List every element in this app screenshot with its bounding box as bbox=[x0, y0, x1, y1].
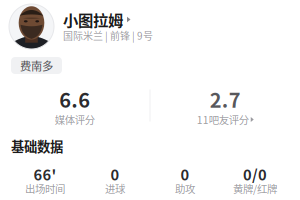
staticText: 出场时间 bbox=[25, 181, 65, 196]
staticText: 媒体评分 bbox=[55, 112, 95, 127]
staticText: 黄牌/红牌 bbox=[233, 181, 277, 196]
button[interactable]: 2.7 bbox=[150, 85, 300, 126]
staticText: 66' bbox=[33, 163, 56, 185]
staticText: 6.6 bbox=[59, 84, 90, 113]
staticText: 2.7 bbox=[210, 84, 241, 113]
staticText: 基础数据 bbox=[11, 136, 63, 156]
staticText: 0/0 bbox=[243, 163, 267, 185]
staticText: 0 bbox=[180, 163, 189, 185]
button[interactable]: 小图拉姆 bbox=[0, 0, 300, 49]
staticText: 进球 bbox=[105, 181, 125, 196]
staticText: 费南多 bbox=[20, 57, 53, 74]
staticText: 0 bbox=[110, 163, 119, 185]
staticText: 助攻 bbox=[175, 181, 195, 196]
staticText: 小图拉姆 bbox=[63, 8, 123, 31]
staticText: 11吧友评分 bbox=[197, 112, 249, 127]
staticText: 国际米兰 | 前锋 | 9号 bbox=[63, 28, 153, 43]
